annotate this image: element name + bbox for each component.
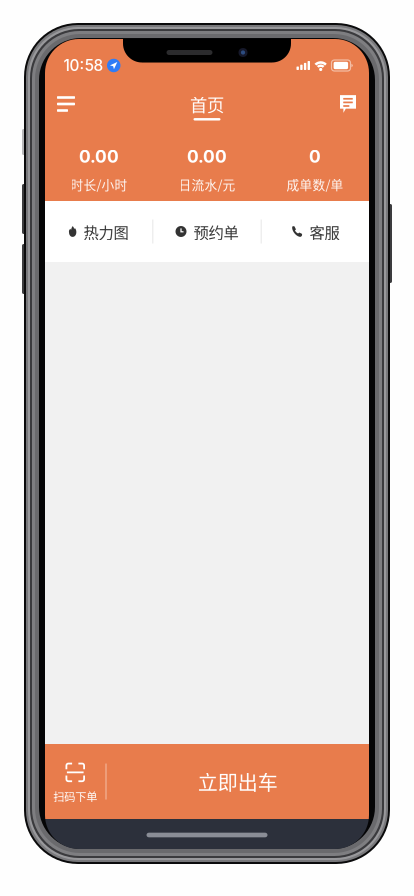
button[interactable]: Messages (326, 86, 369, 122)
button[interactable]: 客服 (262, 201, 369, 262)
staticText: 热力图 (84, 220, 129, 243)
staticText: 0 (309, 146, 321, 167)
button[interactable]: Menu (45, 86, 89, 122)
staticText: 时长/小时 (70, 175, 127, 193)
button[interactable]: 预约单 (153, 201, 261, 262)
staticText: 10:58 (63, 56, 103, 75)
button[interactable]: 扫码下单 (45, 744, 105, 819)
button[interactable]: 热力图 (45, 201, 152, 262)
button[interactable]: 立即出车 (106, 744, 369, 819)
staticText: 立即出车 (198, 767, 278, 796)
staticText: 日流水/元 (178, 175, 235, 193)
staticText: 成单数/单 (286, 175, 343, 193)
staticText: 首页 (190, 91, 224, 117)
staticText: 扫码下单 (53, 788, 97, 804)
staticText: 0.00 (187, 146, 227, 167)
staticText: 预约单 (193, 220, 238, 243)
staticText: 0.00 (79, 146, 119, 167)
staticText: 客服 (309, 220, 339, 243)
